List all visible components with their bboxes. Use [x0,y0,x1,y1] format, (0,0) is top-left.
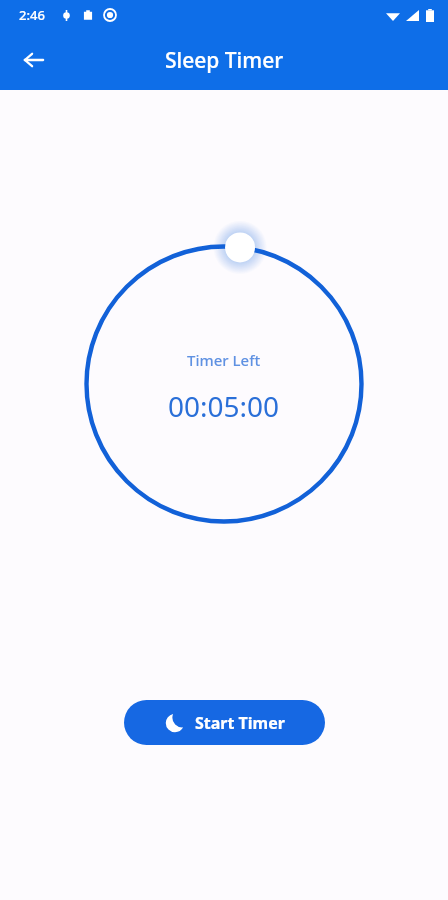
staticText: 00:05:00 [168,387,280,425]
staticText: Sleep Timer [165,46,284,75]
staticText: 2:46 [19,6,45,24]
staticText: Start Timer [195,712,285,734]
staticText: Timer Left [187,350,261,370]
button[interactable]: Back [10,36,58,84]
button[interactable]: Start Timer [124,700,325,745]
button[interactable]: Sleep timer dial [76,236,372,532]
